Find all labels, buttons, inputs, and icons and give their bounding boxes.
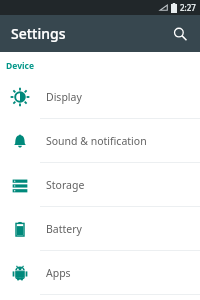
staticText: Apps	[46, 266, 71, 280]
staticText: Device	[6, 60, 34, 72]
button[interactable]: Apps	[0, 251, 200, 294]
staticText: Battery	[46, 222, 82, 236]
staticText: Display	[46, 90, 82, 104]
staticText: 2:27	[180, 2, 196, 13]
button[interactable]: Display	[0, 75, 200, 118]
staticText: Sound & notification	[46, 134, 147, 148]
button[interactable]: Storage	[0, 163, 200, 206]
button[interactable]: Battery	[0, 207, 200, 250]
staticText: Storage	[46, 178, 85, 192]
button[interactable]: Search	[168, 22, 192, 46]
staticText: Settings	[11, 24, 66, 43]
button[interactable]: Sound & notification	[0, 119, 200, 162]
